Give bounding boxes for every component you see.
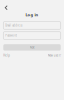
button[interactable]: Next	[3, 44, 61, 51]
staticText: Email address	[5, 24, 22, 27]
button[interactable]: Help	[3, 54, 10, 57]
button[interactable]: New user?	[48, 54, 61, 57]
staticText: New user?	[48, 54, 61, 57]
staticText: Next	[29, 46, 34, 49]
button[interactable]: Back	[3, 1, 14, 12]
staticText: Password	[5, 34, 17, 37]
staticText: Log in	[25, 12, 38, 17]
staticText: Help	[3, 54, 10, 57]
